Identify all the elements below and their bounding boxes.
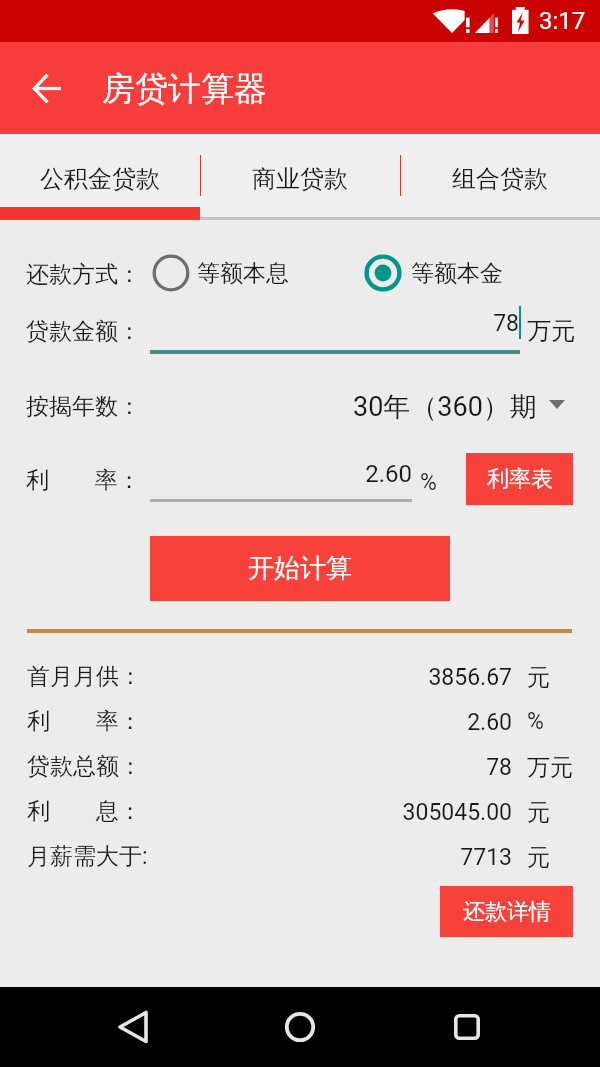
staticText: 商业贷款 — [252, 164, 348, 194]
button[interactable]: Back — [20, 61, 74, 115]
button[interactable]: Home — [274, 1001, 326, 1053]
staticText: 78 — [319, 310, 519, 337]
staticText: 利 率： — [26, 466, 446, 495]
staticText: 贷款总额： — [27, 752, 447, 781]
staticText: 78 — [212, 754, 512, 781]
button[interactable]: 等额本息 — [152, 254, 190, 292]
staticText: 等额本息 — [197, 259, 600, 288]
staticText: 利 息： — [27, 797, 447, 826]
staticText: 元 — [527, 843, 600, 872]
staticText: 万元 — [527, 753, 600, 782]
staticText: 3:17 — [539, 7, 600, 35]
staticText: % — [420, 469, 600, 496]
staticText: 30年（360）期 — [353, 390, 553, 424]
button[interactable]: 公积金贷款 — [0, 134, 200, 220]
staticText: 3856.67 — [212, 664, 512, 691]
staticText: 月薪需大于: — [27, 842, 447, 871]
staticText: 万元 — [527, 316, 600, 346]
staticText: 2.60 — [212, 460, 412, 488]
button[interactable]: Back — [104, 998, 162, 1056]
button[interactable]: Recents — [441, 1001, 493, 1053]
staticText: 利率表 — [487, 465, 553, 493]
button[interactable]: 利率表 — [466, 453, 573, 505]
button[interactable]: 商业贷款 — [200, 134, 400, 220]
staticText: 305045.00 — [212, 799, 512, 826]
staticText: 首月月供： — [27, 662, 447, 691]
staticText: 按揭年数： — [26, 392, 446, 421]
button[interactable]: 等额本金 — [364, 254, 402, 292]
staticText: 组合贷款 — [452, 164, 548, 194]
staticText: 7713 — [212, 844, 512, 871]
staticText: 元 — [527, 798, 600, 827]
staticText: % — [527, 708, 600, 735]
button[interactable]: 还款详情 — [440, 886, 573, 937]
staticText: 元 — [527, 663, 600, 692]
staticText: 还款方式： — [26, 260, 446, 289]
staticText: 贷款金额： — [26, 317, 446, 346]
staticText: 利 率： — [27, 707, 447, 736]
staticText: 2.60 — [212, 709, 512, 736]
button[interactable]: 开始计算 — [150, 536, 450, 601]
staticText: 公积金贷款 — [40, 164, 160, 194]
button[interactable]: 组合贷款 — [400, 134, 600, 220]
staticText: 还款详情 — [463, 898, 551, 926]
staticText: 房贷计算器 — [102, 68, 522, 110]
staticText: 等额本金 — [411, 259, 600, 288]
button[interactable]: 按揭年数 — [345, 381, 570, 429]
staticText: 开始计算 — [248, 552, 352, 585]
